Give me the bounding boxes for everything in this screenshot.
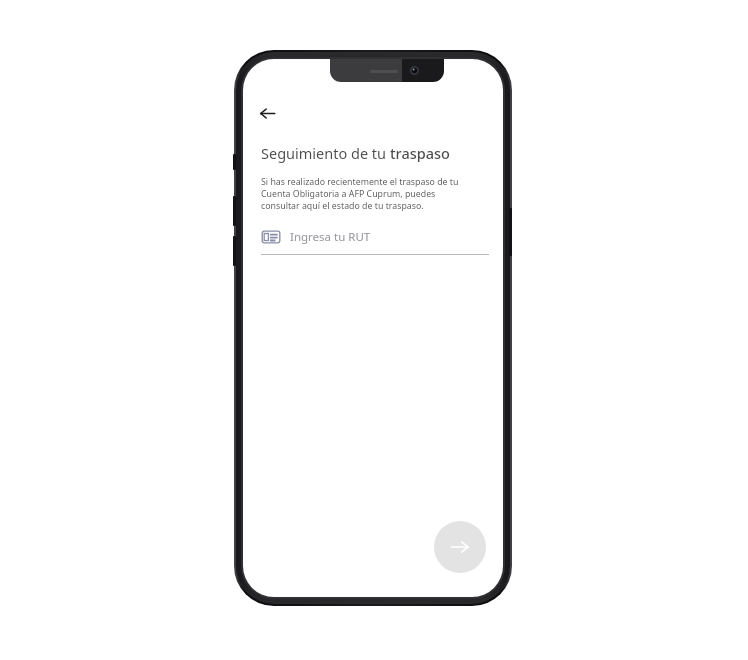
button[interactable]: Ingresa tu RUT [261, 226, 489, 255]
staticText: Cuenta Obligatoria a AFP Cuprum, puedes [261, 188, 436, 200]
button[interactable]: Back [251, 97, 283, 129]
staticText: Si has realizado recientemente el traspa… [261, 176, 459, 188]
staticText: Seguimiento de tu [261, 143, 390, 163]
staticText: Ingresa tu RUT [290, 229, 371, 245]
button[interactable]: Continue [434, 521, 486, 573]
staticText: consultar aquí el estado de tu traspaso. [261, 200, 424, 212]
staticText: traspaso [390, 143, 450, 163]
